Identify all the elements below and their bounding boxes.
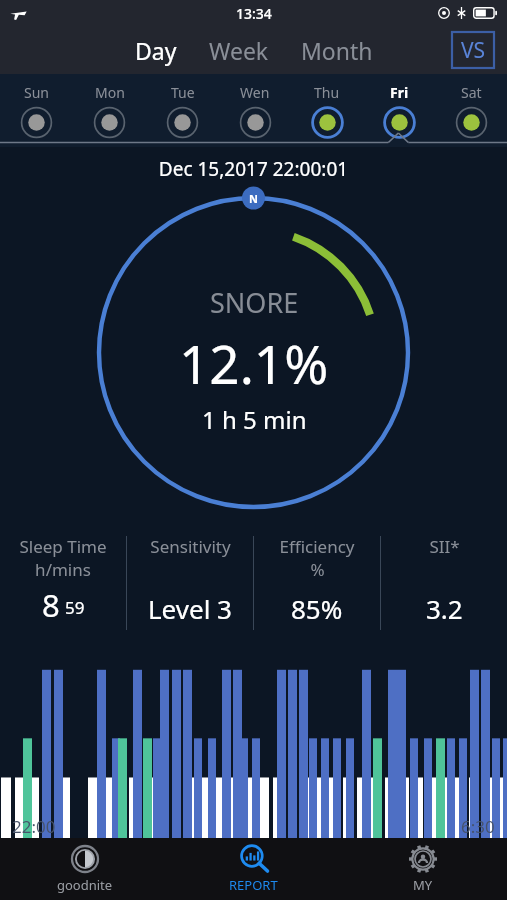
button[interactable]: Wen xyxy=(219,74,291,147)
staticText: REPORT xyxy=(229,876,278,894)
staticText: Fri xyxy=(390,83,409,102)
staticText: Efficiency xyxy=(279,535,355,558)
staticText: Sun xyxy=(24,83,49,102)
staticText: Month xyxy=(301,35,373,66)
button[interactable]: Week xyxy=(193,27,285,74)
staticText: 85% xyxy=(291,591,343,626)
staticText: Thu xyxy=(314,83,340,102)
button[interactable]: Sleep Time xyxy=(0,522,126,640)
button[interactable]: Day xyxy=(119,27,193,74)
staticText: Wen xyxy=(240,83,270,102)
button[interactable]: Mon xyxy=(73,74,146,147)
button[interactable]: goodnite xyxy=(0,838,169,900)
staticText: SNORE xyxy=(210,284,299,321)
staticText: 59 xyxy=(65,596,85,619)
staticText: N xyxy=(249,191,258,206)
staticText: 6:30 xyxy=(461,815,495,838)
button[interactable]: REPORT xyxy=(169,838,338,900)
staticText: Sat xyxy=(461,83,482,102)
staticText: 12.1% xyxy=(179,327,329,399)
button[interactable]: Sensitivity xyxy=(127,522,253,640)
staticText: MY xyxy=(413,876,433,894)
button[interactable]: SII* xyxy=(381,522,507,640)
button[interactable]: Efficiency xyxy=(254,522,380,640)
button[interactable]: Fri xyxy=(363,74,435,147)
button[interactable]: Sun xyxy=(0,74,73,147)
staticText: 1 h 5 min xyxy=(202,403,307,436)
button[interactable]: Tue xyxy=(146,74,219,147)
staticText: 3.2 xyxy=(426,591,463,626)
staticText: Day xyxy=(135,35,177,66)
button[interactable]: MY xyxy=(338,838,507,900)
staticText: Sensitivity xyxy=(150,535,231,558)
button[interactable]: Thu xyxy=(291,74,363,147)
staticText: Tue xyxy=(171,83,195,102)
staticText: Mon xyxy=(95,83,125,102)
staticText: Level 3 xyxy=(148,591,232,626)
staticText: 13:34 xyxy=(236,4,272,23)
staticText: 8 xyxy=(42,584,60,626)
staticText: SII* xyxy=(429,535,460,558)
staticText: Sleep Time xyxy=(19,535,107,558)
staticText: VS xyxy=(461,36,486,65)
staticText: Week xyxy=(209,35,269,66)
staticText: goodnite xyxy=(57,876,113,894)
staticText: h/mins xyxy=(35,558,91,581)
button[interactable]: Month xyxy=(285,27,389,74)
staticText: % xyxy=(310,558,325,581)
staticText: Dec 15,2017 22:00:01 xyxy=(0,156,507,182)
button[interactable]: Compare VS xyxy=(452,32,494,68)
button[interactable]: Sat xyxy=(435,74,507,147)
staticText: 22:00 xyxy=(12,815,56,838)
